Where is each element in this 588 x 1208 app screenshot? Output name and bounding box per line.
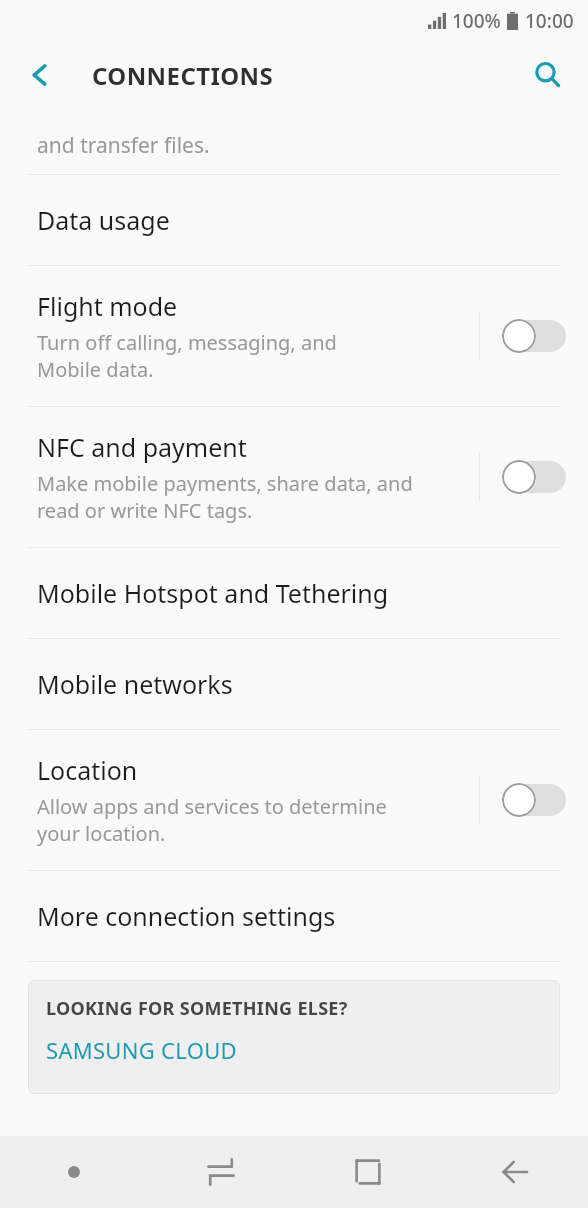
button[interactable]: Home <box>294 1136 441 1208</box>
staticText: Mobile networks <box>37 667 233 701</box>
button[interactable]: Recent apps <box>147 1136 294 1208</box>
button[interactable]: Mobile Hotspot and Tethering <box>0 548 588 638</box>
staticText: 100% <box>452 8 501 34</box>
staticText: Mobile Hotspot and Tethering <box>37 576 389 610</box>
button[interactable]: NFC and payment toggle <box>480 407 588 547</box>
button[interactable]: Back <box>441 1136 588 1208</box>
button[interactable]: SAMSUNG CLOUD <box>46 1035 237 1065</box>
button[interactable]: Back <box>14 49 66 101</box>
staticText: Turn off calling, messaging, and <box>37 329 337 356</box>
staticText: and transfer files. <box>37 131 210 160</box>
staticText: LOOKING FOR SOMETHING ELSE? <box>46 996 348 1021</box>
staticText: Mobile data. <box>37 356 154 383</box>
staticText: CONNECTIONS <box>92 59 274 92</box>
staticText: Data usage <box>37 203 170 237</box>
button[interactable]: More connection settings <box>0 871 588 961</box>
button[interactable]: Keyboard indicator <box>0 1136 147 1208</box>
staticText: Make mobile payments, share data, and <box>37 470 413 497</box>
staticText: Location <box>37 753 138 787</box>
button[interactable]: Flight mode toggle <box>480 266 588 406</box>
button[interactable]: Location <box>0 730 588 870</box>
staticText: More connection settings <box>37 899 336 933</box>
button[interactable]: Search <box>522 49 574 101</box>
staticText: NFC and payment <box>37 430 247 464</box>
staticText: read or write NFC tags. <box>37 497 253 524</box>
staticText: Flight mode <box>37 289 178 323</box>
staticText: your location. <box>37 820 166 847</box>
button[interactable]: Flight mode <box>0 266 588 406</box>
button[interactable]: and transfer files. <box>0 108 588 174</box>
button[interactable]: NFC and payment <box>0 407 588 547</box>
button[interactable]: Location toggle <box>480 730 588 870</box>
button[interactable]: LOOKING FOR SOMETHING ELSE? <box>28 980 560 1094</box>
staticText: Allow apps and services to determine <box>37 793 387 820</box>
staticText: 10:00 <box>525 8 574 34</box>
button[interactable]: Mobile networks <box>0 639 588 729</box>
button[interactable]: Data usage <box>0 175 588 265</box>
